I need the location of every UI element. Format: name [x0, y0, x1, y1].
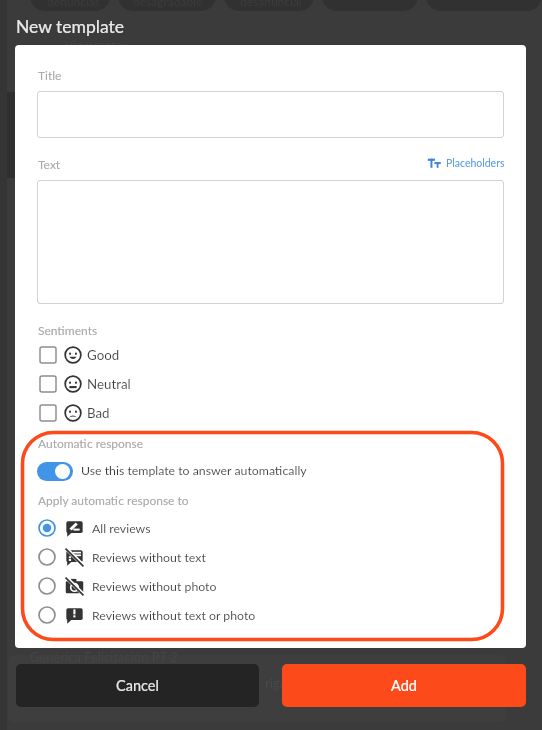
button[interactable]: Add [282, 664, 526, 707]
button[interactable] [37, 91, 504, 138]
button[interactable]: Bad [37, 401, 110, 425]
staticText: riga [265, 675, 287, 691]
staticText: Cancel [116, 677, 159, 694]
staticText: Title [38, 68, 62, 82]
staticText: desanuncial [240, 0, 302, 8]
button[interactable] [37, 180, 504, 304]
staticText: Text [38, 157, 61, 171]
staticText: desagradable [133, 0, 203, 8]
button[interactable]: Reviews without text or photo [37, 603, 256, 627]
staticText: Apply automatic response to [38, 493, 189, 507]
staticText: Neutral [87, 376, 131, 392]
staticText: Reviews without text [92, 550, 206, 565]
button[interactable]: Neutral [37, 372, 131, 396]
staticText: Reviews without photo [92, 579, 217, 594]
staticText: Genérica Felicitación PT 2 [30, 649, 178, 665]
staticText: Sentiments [38, 323, 98, 337]
staticText: Use this template to answer automaticall… [81, 463, 307, 478]
staticText: View more [65, 37, 122, 51]
staticText: Placeholders [446, 157, 505, 170]
button[interactable]: Reviews without text [37, 545, 206, 569]
staticText: denuncias [47, 0, 100, 8]
button[interactable]: All reviews [37, 516, 151, 540]
button[interactable]: Use this template to answer automaticall… [37, 459, 307, 481]
staticText: All reviews [92, 521, 151, 536]
button[interactable]: Good [37, 343, 120, 367]
staticText: Bad [87, 405, 110, 421]
button[interactable]: Reviews without photo [37, 574, 217, 598]
staticText: Reviews without text or photo [92, 608, 256, 623]
button[interactable]: Placeholders [427, 154, 505, 172]
staticText: Automatic response [38, 436, 144, 450]
staticText: Add [391, 677, 417, 694]
staticText: New template [16, 16, 124, 37]
staticText: Good [87, 347, 120, 363]
button[interactable]: Cancel [16, 664, 259, 707]
